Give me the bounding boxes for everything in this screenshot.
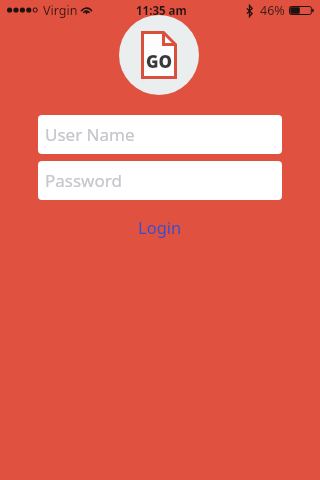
other: GO app logo bbox=[119, 15, 199, 95]
staticText: Login bbox=[138, 216, 182, 238]
staticText: 11:35 am bbox=[136, 3, 187, 19]
staticText: GO bbox=[146, 50, 173, 73]
staticText: User Name bbox=[45, 123, 135, 146]
staticText: Password bbox=[45, 169, 122, 192]
other: Bluetooth bbox=[246, 5, 253, 17]
other: Wi-Fi bbox=[80, 5, 93, 15]
button[interactable]: User Name bbox=[38, 115, 282, 154]
staticText: Virgin bbox=[43, 2, 78, 19]
staticText: 46% bbox=[260, 2, 285, 19]
button[interactable]: Login bbox=[38, 213, 282, 239]
button[interactable]: Password bbox=[38, 161, 282, 200]
other: Battery 46 percent bbox=[289, 6, 314, 15]
